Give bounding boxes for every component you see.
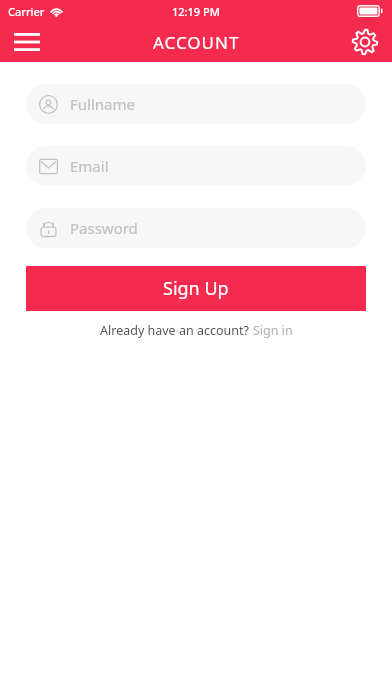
button[interactable]: Email [26,146,366,186]
button[interactable]: Menu [0,22,54,62]
staticText: ACCOUNT [153,31,240,54]
staticText: Sign in [253,322,293,339]
staticText: Sign Up [163,276,229,301]
button[interactable]: Password [26,208,366,248]
button[interactable]: Already have an account? [0,322,392,339]
staticText: Email [70,156,109,176]
button[interactable]: Settings [338,22,392,62]
staticText: Fullname [70,94,135,114]
staticText: Password [70,218,138,238]
staticText: 12:19 PM [172,4,220,19]
button[interactable]: Sign Up [26,266,366,311]
staticText: Carrier [8,4,45,19]
staticText: Already have an account? [100,322,253,339]
button[interactable]: Fullname [26,84,366,124]
